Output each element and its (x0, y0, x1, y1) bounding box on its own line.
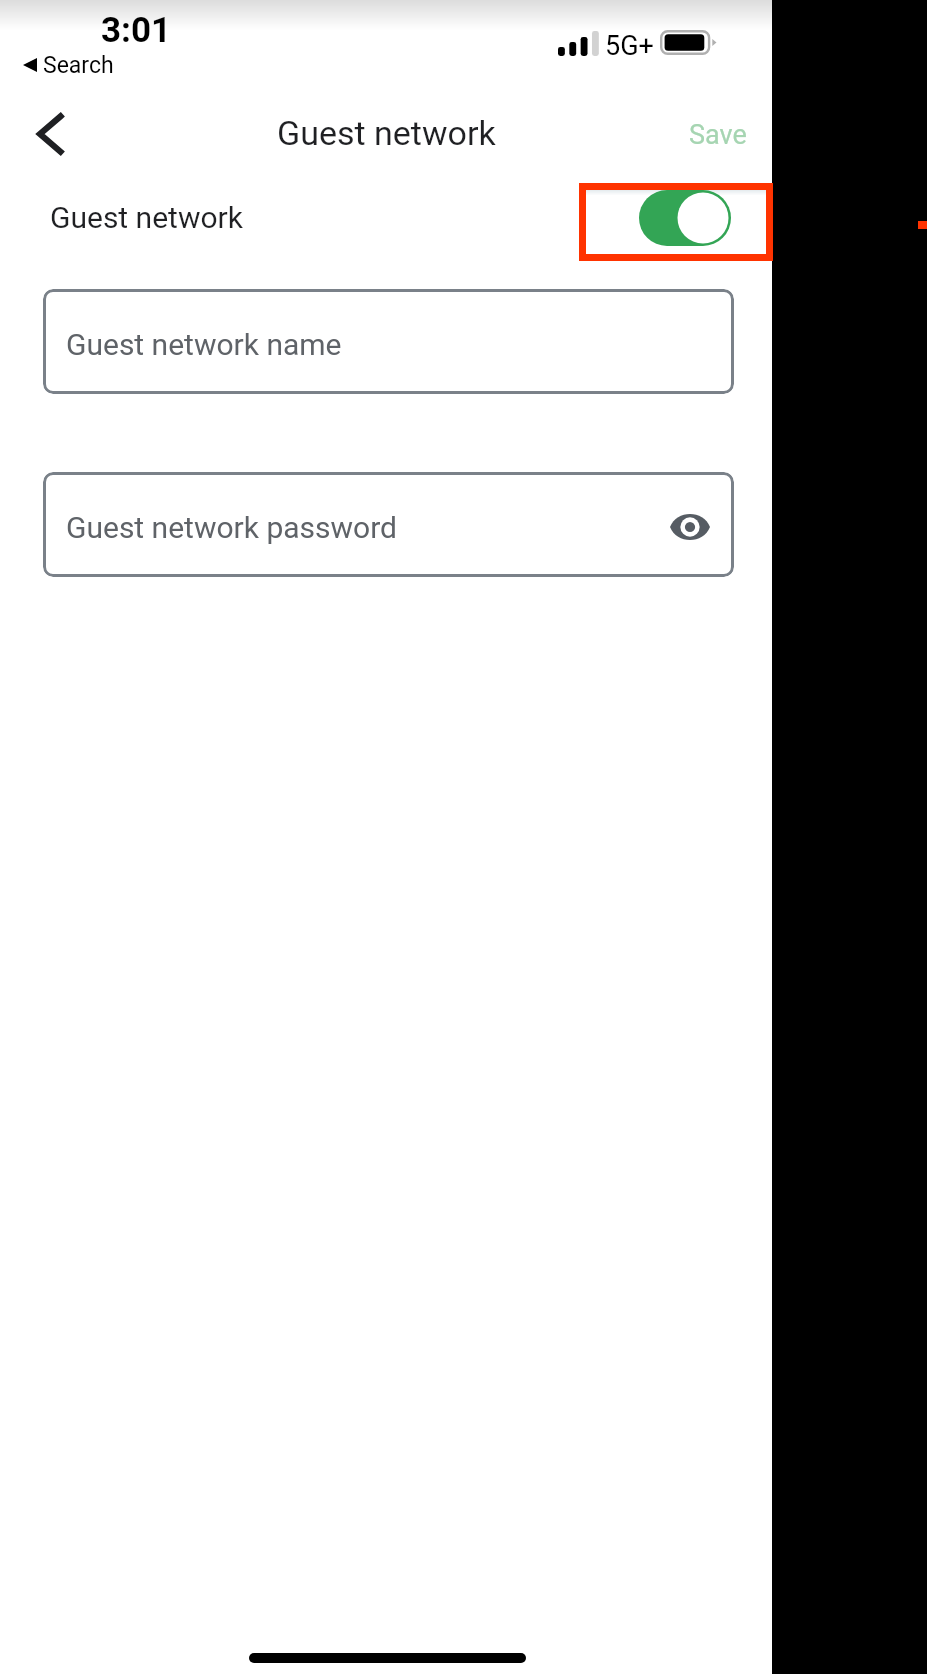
staticText: Guest network password (66, 510, 397, 545)
staticText: 5G+ (605, 30, 654, 62)
button[interactable]: Back (17, 101, 83, 167)
staticText: Guest network (50, 200, 243, 235)
button[interactable]: Show password (660, 497, 720, 557)
staticText: Guest network name (66, 327, 342, 362)
staticText: 3:01 (101, 10, 172, 51)
staticText: Guest network (277, 113, 496, 153)
staticText: Save (689, 119, 747, 151)
button[interactable]: Guest network password (43, 472, 734, 577)
button[interactable]: Guest network name (43, 289, 734, 394)
staticText: Search (43, 52, 114, 79)
button[interactable]: Guest network toggle (639, 190, 731, 246)
button[interactable]: Save (666, 99, 770, 169)
